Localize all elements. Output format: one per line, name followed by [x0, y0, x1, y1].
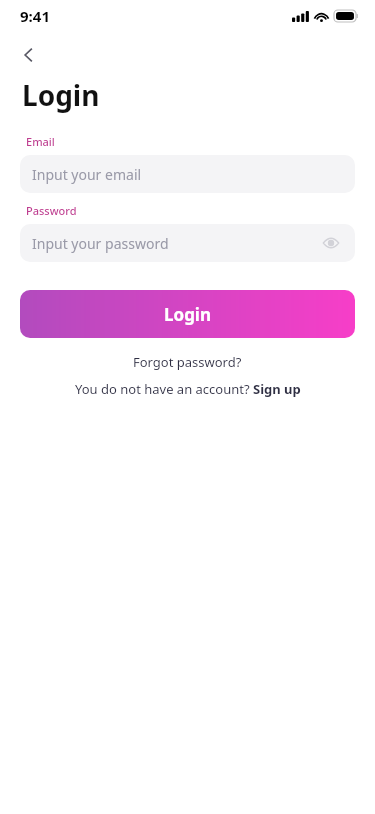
staticText: Password — [26, 203, 77, 218]
staticText: Forgot password? — [133, 353, 242, 371]
staticText: Email — [26, 134, 55, 149]
staticText: Login — [22, 76, 100, 114]
staticText: Input your email — [32, 165, 142, 184]
button[interactable]: Show password — [321, 233, 341, 253]
button[interactable]: Login — [20, 290, 355, 338]
staticText: 9:41 — [20, 6, 50, 26]
button[interactable]: Input your email — [20, 155, 355, 193]
staticText: Login — [164, 303, 212, 326]
staticText: You do not have an account? Sign up — [75, 380, 301, 398]
button[interactable]: Back — [12, 38, 46, 72]
button[interactable]: Input your password — [20, 224, 355, 262]
staticText: Input your password — [32, 234, 169, 253]
button[interactable]: Forgot password? — [125, 351, 250, 373]
button[interactable]: You do not have an account? Sign up — [67, 378, 309, 400]
